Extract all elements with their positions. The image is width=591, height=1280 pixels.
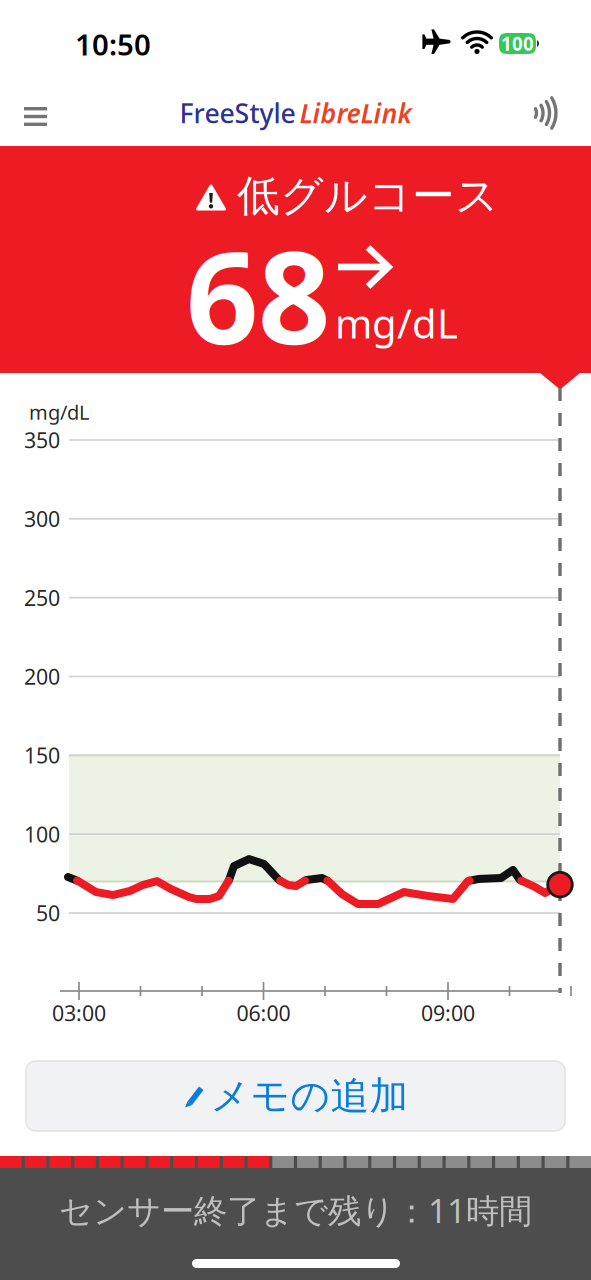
staticText: センサー終了まで残り：11時間 [59, 1188, 532, 1232]
staticText: 低グルコース [237, 170, 499, 222]
staticText: 06:00 [236, 999, 290, 1027]
staticText: 200 [24, 662, 60, 691]
staticText: 150 [24, 741, 60, 769]
staticText: mg/dL [29, 399, 89, 425]
staticText: 300 [24, 505, 60, 533]
staticText: mg/dL [335, 296, 458, 349]
staticText: 350 [24, 426, 60, 454]
staticText: 250 [24, 583, 60, 612]
staticText: メモの追加 [210, 1072, 408, 1120]
staticText: 68 [186, 211, 330, 379]
staticText: LibreLink [299, 95, 411, 131]
staticText: 09:00 [421, 999, 475, 1027]
staticText: 50 [36, 899, 60, 927]
staticText: 100 [24, 820, 60, 848]
staticText: FreeStyle [179, 95, 295, 131]
staticText: 03:00 [52, 999, 106, 1027]
staticText: 10:50 [75, 24, 151, 63]
staticText: 100 [501, 31, 534, 56]
button[interactable]: メモの追加 [0, 0, 539, 70]
